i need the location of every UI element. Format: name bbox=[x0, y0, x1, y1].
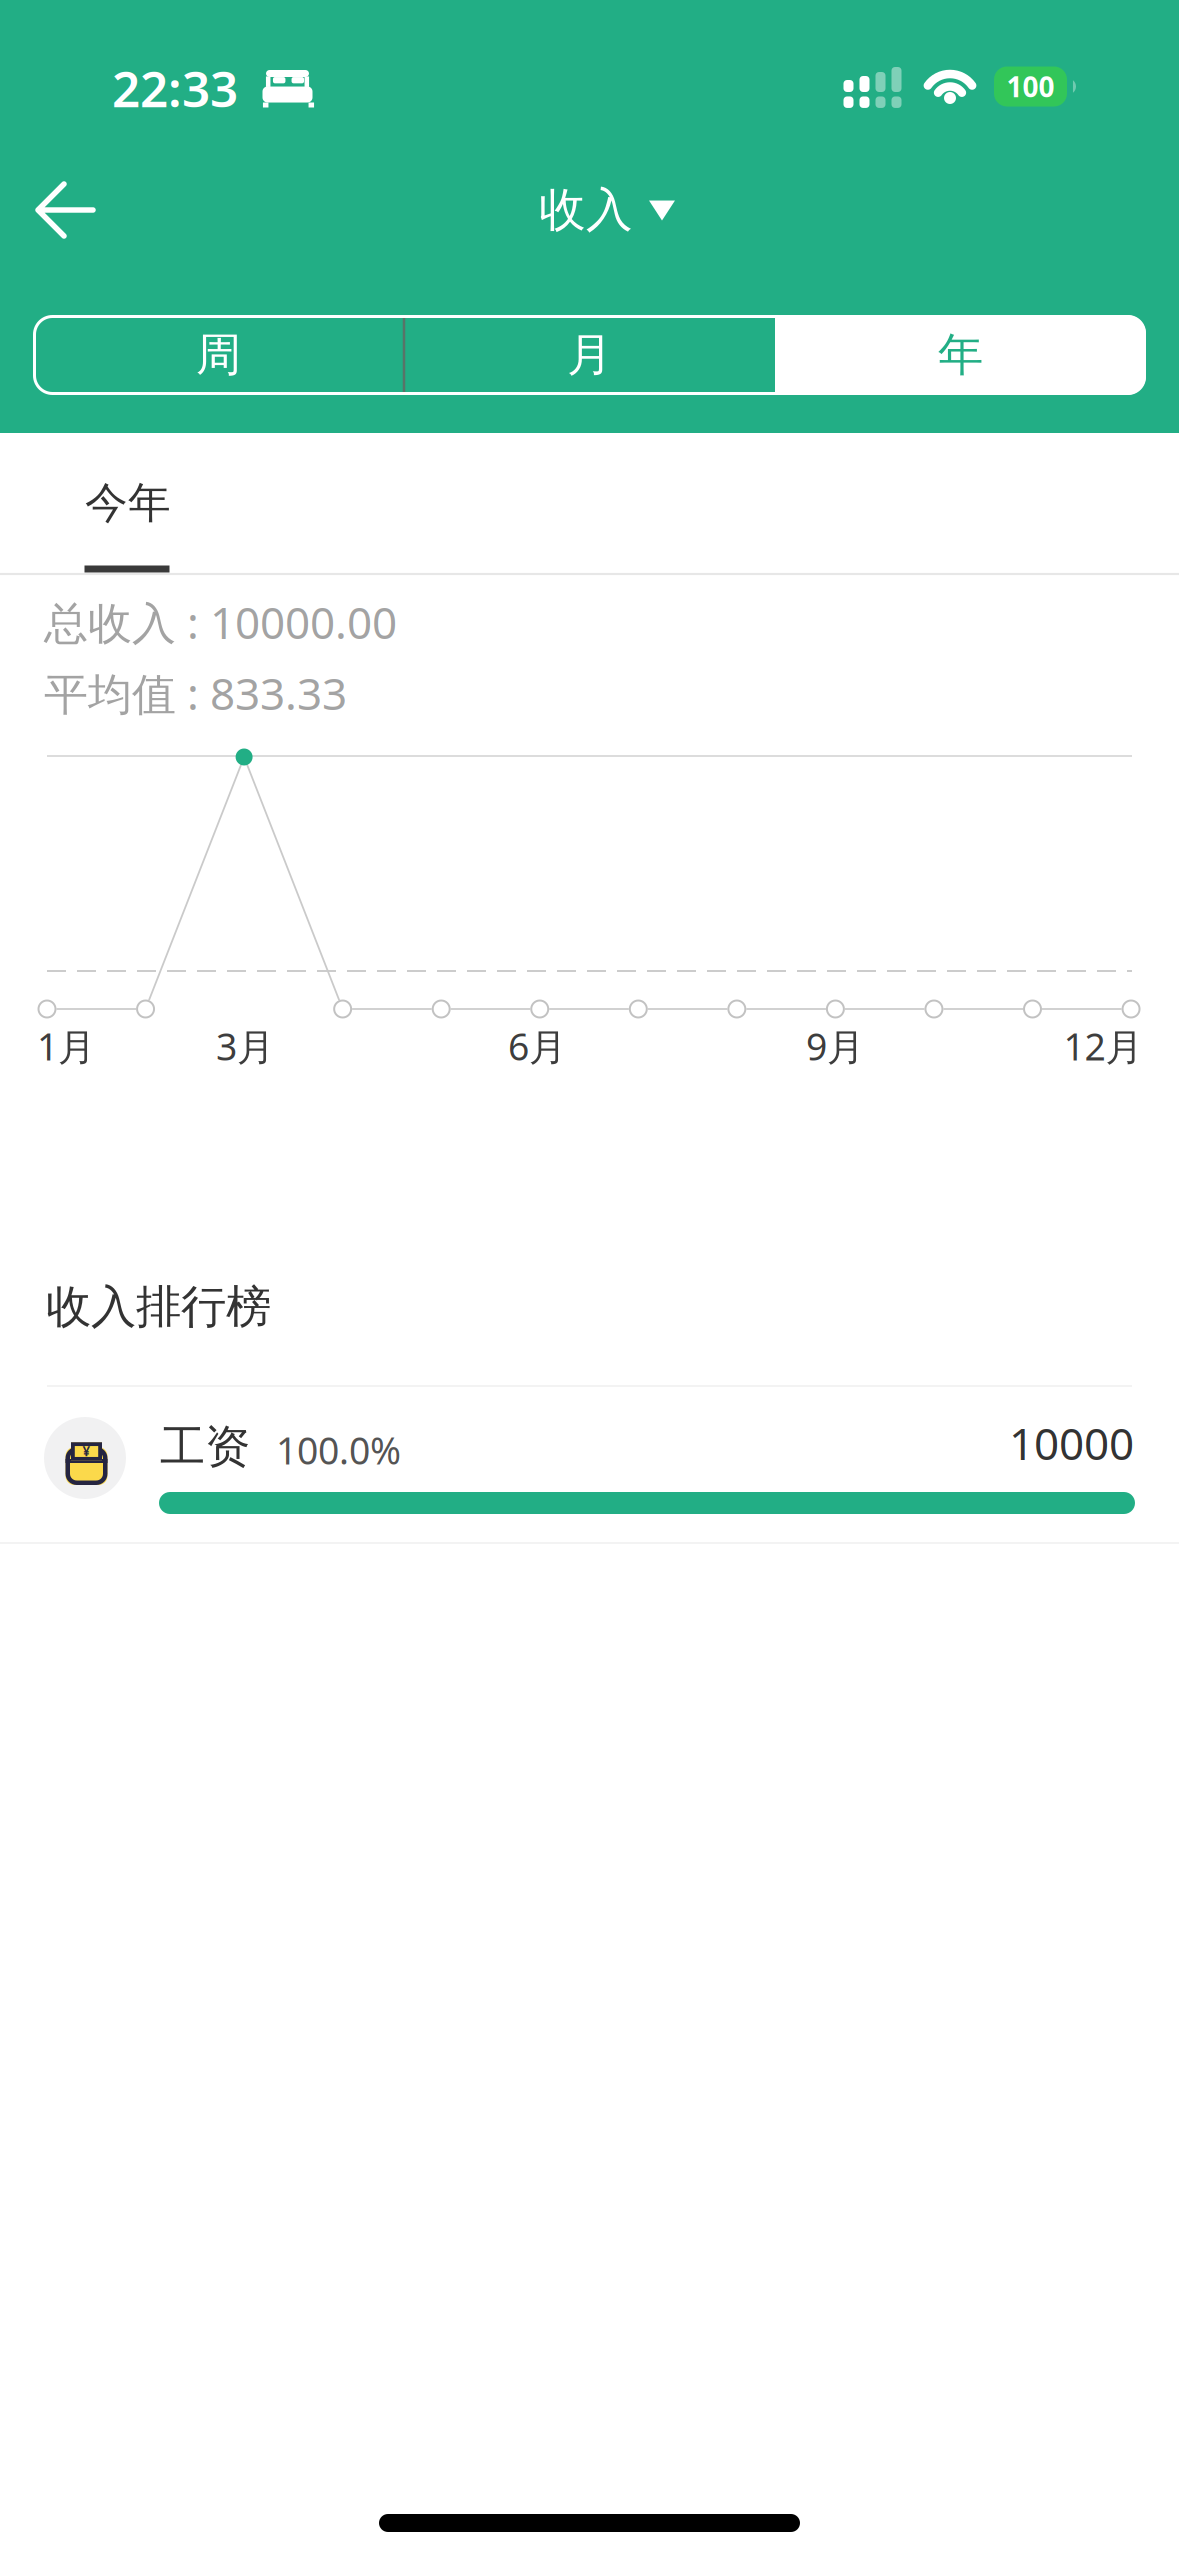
staticText: 100 bbox=[1006, 68, 1054, 105]
button[interactable]: 周 bbox=[38, 315, 398, 395]
button[interactable]: 收入 bbox=[513, 173, 679, 247]
button[interactable]: 年 bbox=[780, 315, 1140, 395]
staticText: 月 bbox=[567, 327, 612, 383]
staticText: 总收入 : 10000.00 bbox=[44, 593, 397, 651]
staticText: 周 bbox=[196, 327, 241, 383]
staticText: ¥ bbox=[82, 1442, 90, 1460]
button[interactable]: ¥ bbox=[0, 1386, 1179, 1542]
staticText: 10000 bbox=[1009, 1414, 1134, 1472]
staticText: 3月 bbox=[216, 1021, 274, 1071]
staticText: 今年 bbox=[85, 477, 171, 529]
staticText: 收入 bbox=[539, 181, 633, 239]
staticText: 年 bbox=[938, 327, 983, 383]
button[interactable]: 今年 bbox=[84, 474, 210, 574]
staticText: 平均值 : 833.33 bbox=[44, 664, 347, 722]
staticText: 6月 bbox=[508, 1021, 566, 1071]
staticText: 9月 bbox=[806, 1021, 864, 1071]
staticText: 工资 bbox=[160, 1419, 250, 1475]
button[interactable] bbox=[16, 170, 116, 250]
staticText: 1月 bbox=[37, 1021, 95, 1071]
staticText: 收入排行榜 bbox=[46, 1279, 271, 1335]
staticText: 22:33 bbox=[112, 55, 238, 121]
staticText: 12月 bbox=[1063, 1021, 1142, 1071]
button[interactable]: 月 bbox=[409, 315, 769, 395]
staticText: 100.0% bbox=[276, 1425, 401, 1475]
